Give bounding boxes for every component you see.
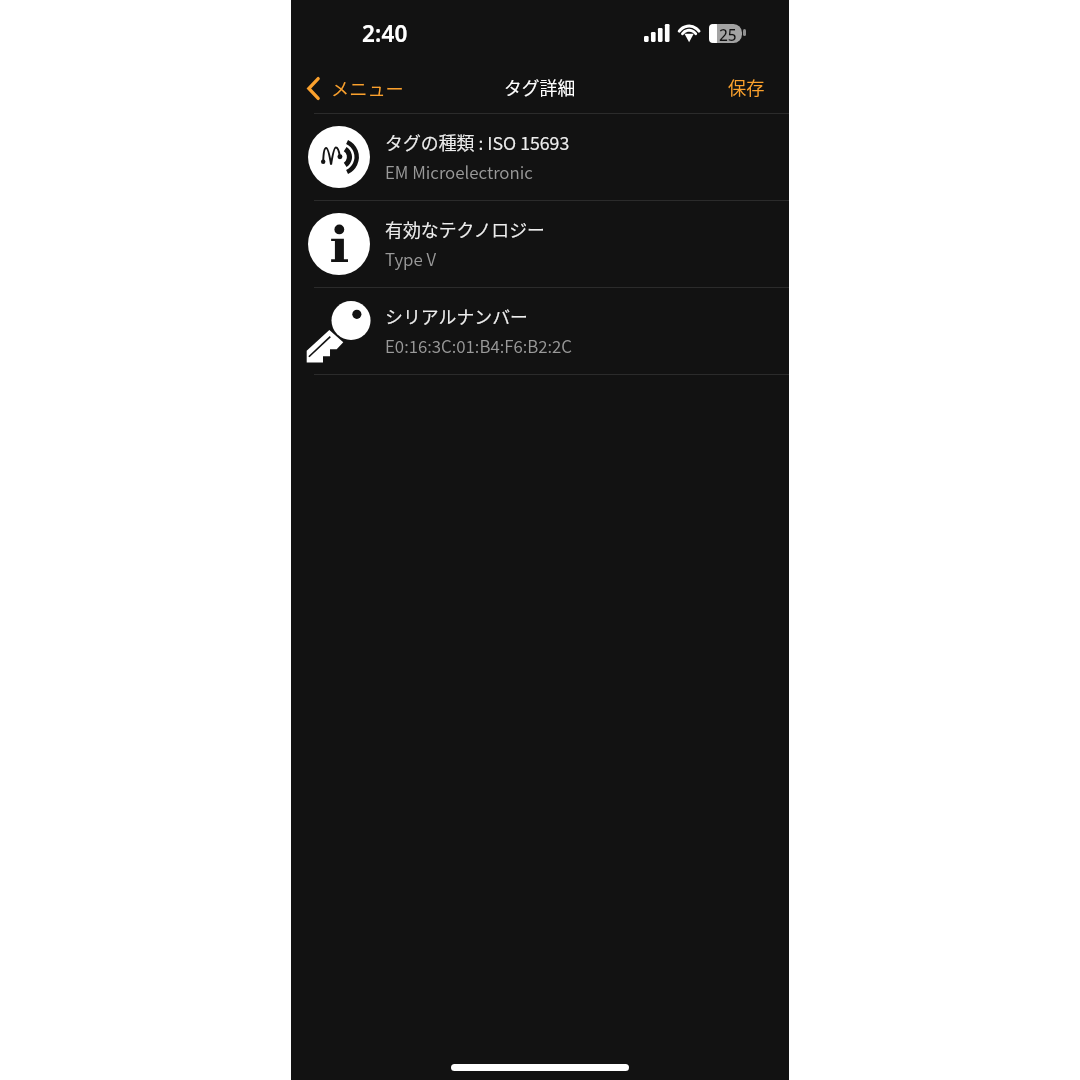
other: NFC tag type (308, 126, 370, 188)
other: Cellular signal strength (644, 24, 671, 42)
staticText: タグの種類 : ISO 15693 (385, 129, 570, 155)
staticText: E0:16:3C:01:B4:F6:B2:2C (385, 333, 573, 357)
button[interactable]: 保存 (720, 64, 773, 110)
staticText: タグ詳細 (504, 74, 576, 100)
staticText: EM Microelectronic (385, 159, 533, 183)
staticText: Type V (385, 246, 437, 270)
staticText: 有効なテクノロジー (385, 216, 545, 242)
other: Serial number (304, 296, 374, 366)
staticText: 25 (719, 24, 737, 45)
button[interactable]: Serial number (291, 288, 789, 374)
other: Supported technology (308, 213, 370, 275)
staticText: メニュー (331, 75, 404, 101)
button[interactable]: Supported technology (291, 201, 789, 287)
other: Battery 25 percent (709, 24, 742, 45)
button[interactable]: NFC tag type (291, 114, 789, 200)
staticText: 2:40 (362, 18, 408, 49)
button[interactable]: メニュー (301, 66, 412, 110)
staticText: シリアルナンバー (385, 303, 528, 329)
other: Wi-Fi connected (677, 19, 703, 40)
